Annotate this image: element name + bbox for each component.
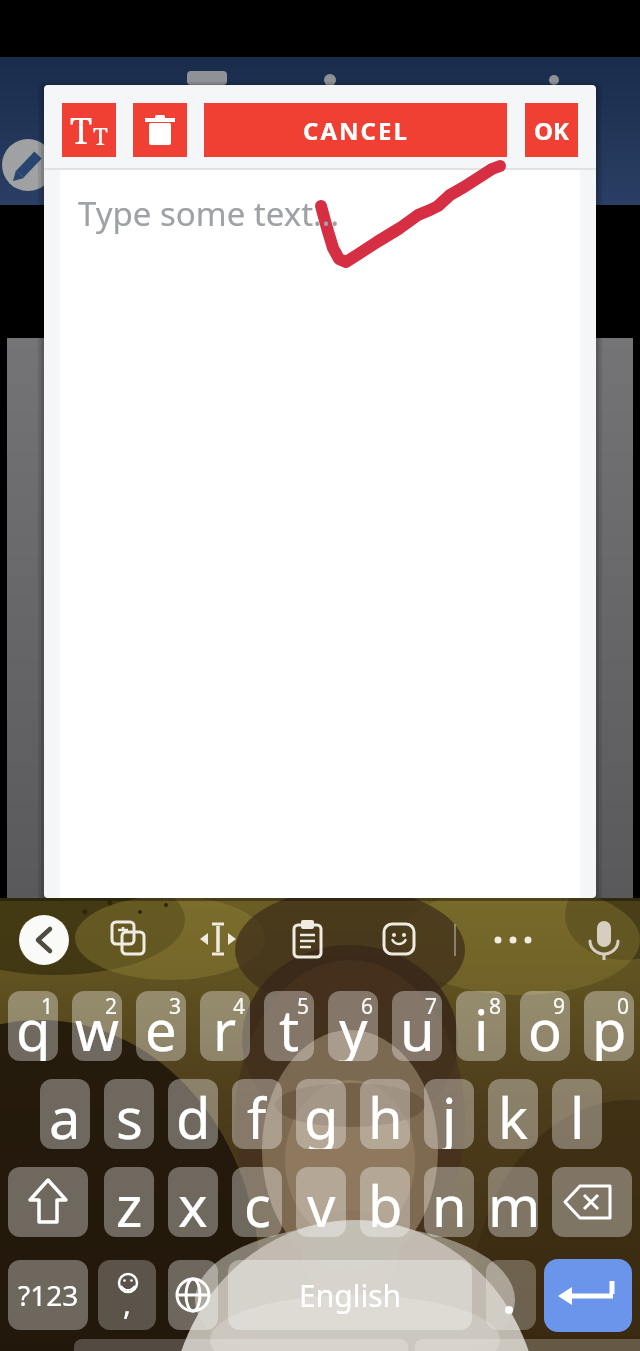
button[interactable]: T xyxy=(62,103,116,157)
staticText: o xyxy=(528,991,562,1061)
staticText: ?123 xyxy=(18,1276,79,1314)
button[interactable] xyxy=(579,915,629,965)
button[interactable] xyxy=(486,1260,536,1330)
button[interactable]: d xyxy=(168,1079,218,1149)
button[interactable] xyxy=(133,103,187,157)
button[interactable] xyxy=(168,1260,218,1330)
staticText: r xyxy=(213,991,237,1061)
staticText: 7 xyxy=(425,992,438,1021)
staticText: q xyxy=(16,991,51,1061)
staticText: y xyxy=(339,991,368,1061)
staticText: b xyxy=(368,1167,403,1237)
staticText: a xyxy=(49,1079,81,1149)
staticText: i xyxy=(474,991,489,1061)
staticText: t xyxy=(279,991,300,1061)
staticText: n xyxy=(432,1167,467,1237)
staticText: 3 xyxy=(169,992,182,1021)
staticText: T xyxy=(93,119,108,152)
button[interactable]: s xyxy=(104,1079,154,1149)
staticText: Type some text… xyxy=(78,191,340,236)
button[interactable]: b xyxy=(360,1167,410,1237)
staticText: j xyxy=(442,1079,457,1149)
button[interactable]: z xyxy=(104,1167,154,1237)
button[interactable]: x xyxy=(168,1167,218,1237)
staticText: m xyxy=(488,1167,538,1237)
staticText: l xyxy=(570,1079,585,1149)
staticText: 2 xyxy=(105,992,118,1021)
staticText: u xyxy=(400,991,435,1061)
staticText: CANCEL xyxy=(303,114,409,147)
button[interactable]: q xyxy=(8,991,58,1061)
staticText: 9 xyxy=(553,992,566,1021)
button[interactable]: f xyxy=(232,1079,282,1149)
button[interactable]: , xyxy=(98,1260,156,1330)
button[interactable]: m xyxy=(488,1167,538,1237)
button[interactable]: t xyxy=(264,991,314,1061)
button[interactable] xyxy=(488,915,538,965)
staticText: d xyxy=(176,1079,211,1149)
button[interactable]: e xyxy=(136,991,186,1061)
staticText: k xyxy=(498,1079,528,1149)
button[interactable] xyxy=(373,915,423,965)
button[interactable]: English xyxy=(228,1260,472,1330)
button[interactable] xyxy=(282,915,332,965)
button[interactable]: i xyxy=(456,991,506,1061)
staticText: p xyxy=(592,991,627,1061)
staticText: English xyxy=(299,1275,402,1316)
button[interactable]: k xyxy=(488,1079,538,1149)
button[interactable]: a xyxy=(40,1079,90,1149)
staticText: 0 xyxy=(617,992,630,1021)
staticText: OK xyxy=(534,114,569,147)
staticText: z xyxy=(116,1167,143,1237)
button[interactable]: c xyxy=(232,1167,282,1237)
staticText: T xyxy=(70,106,93,155)
button[interactable] xyxy=(103,915,153,965)
staticText: h xyxy=(368,1079,403,1149)
button[interactable]: y xyxy=(328,991,378,1061)
button[interactable]: g xyxy=(296,1079,346,1149)
staticText: w xyxy=(75,991,120,1061)
button[interactable]: p xyxy=(584,991,634,1061)
button[interactable]: j xyxy=(424,1079,474,1149)
button[interactable] xyxy=(552,1167,632,1237)
button[interactable]: l xyxy=(552,1079,602,1149)
button[interactable] xyxy=(19,915,69,965)
button[interactable]: o xyxy=(520,991,570,1061)
staticText: 8 xyxy=(489,992,502,1021)
button[interactable]: v xyxy=(296,1167,346,1237)
button[interactable]: h xyxy=(360,1079,410,1149)
button[interactable] xyxy=(193,915,243,965)
button[interactable]: OK xyxy=(525,103,578,157)
button[interactable]: w xyxy=(72,991,122,1061)
staticText: 4 xyxy=(233,992,246,1021)
staticText: e xyxy=(145,991,177,1061)
button[interactable]: n xyxy=(424,1167,474,1237)
staticText: x xyxy=(178,1167,208,1237)
button[interactable]: CANCEL xyxy=(204,103,507,157)
staticText: g xyxy=(304,1079,339,1149)
button[interactable]: ?123 xyxy=(8,1260,88,1330)
button[interactable] xyxy=(544,1259,632,1332)
staticText: v xyxy=(307,1167,336,1237)
button[interactable]: r xyxy=(200,991,250,1061)
staticText: f xyxy=(247,1079,267,1149)
staticText: c xyxy=(244,1167,271,1237)
staticText: 1 xyxy=(41,992,54,1021)
staticText: , xyxy=(123,1283,132,1324)
staticText: 6 xyxy=(361,992,374,1021)
staticText: 5 xyxy=(297,992,310,1021)
button[interactable] xyxy=(8,1167,88,1237)
button[interactable]: u xyxy=(392,991,442,1061)
staticText: s xyxy=(116,1079,143,1149)
